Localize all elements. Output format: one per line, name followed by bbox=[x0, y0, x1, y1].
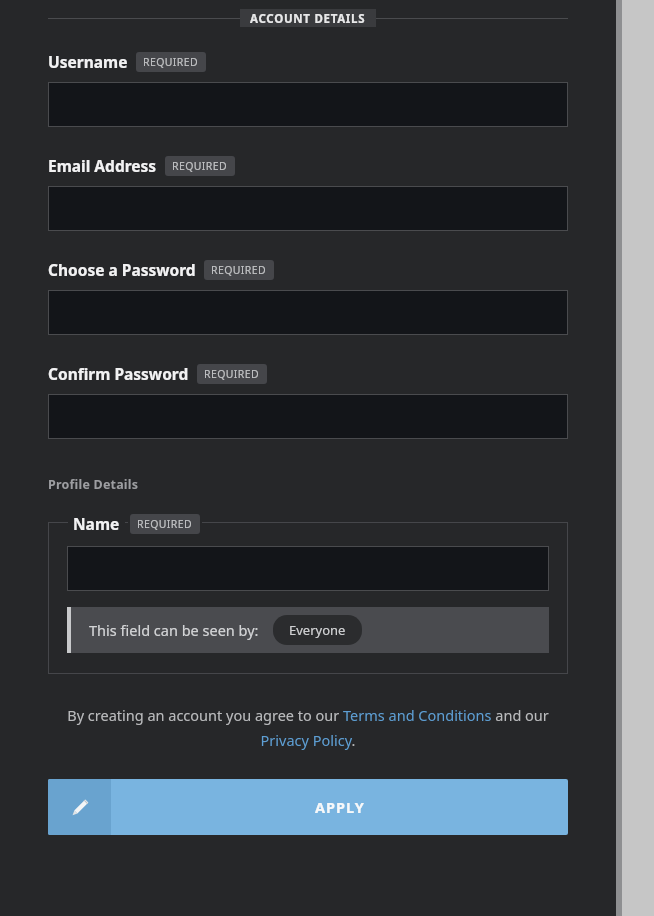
button[interactable]: Edit bbox=[48, 779, 568, 835]
staticText: This field can be seen by: bbox=[89, 620, 259, 640]
button[interactable] bbox=[67, 546, 549, 591]
other: Edit bbox=[48, 779, 111, 835]
staticText: Choose a Password bbox=[48, 259, 196, 280]
staticText: Name bbox=[73, 513, 120, 534]
button[interactable]: By creating an account you agree to our … bbox=[48, 705, 568, 750]
button[interactable] bbox=[48, 82, 568, 127]
staticText: REQUIRED bbox=[137, 517, 193, 531]
staticText: Email Address bbox=[48, 155, 157, 176]
staticText: REQUIRED bbox=[172, 159, 228, 173]
staticText: Everyone bbox=[289, 621, 346, 639]
button[interactable] bbox=[48, 186, 568, 231]
staticText: REQUIRED bbox=[211, 263, 267, 277]
staticText: REQUIRED bbox=[143, 55, 199, 69]
staticText: ACCOUNT DETAILS bbox=[250, 11, 366, 25]
button[interactable] bbox=[48, 290, 568, 335]
button[interactable] bbox=[48, 394, 568, 439]
staticText: APPLY bbox=[315, 797, 365, 817]
staticText: Profile Details bbox=[48, 476, 139, 493]
button[interactable]: Everyone bbox=[273, 615, 362, 645]
staticText: Confirm Password bbox=[48, 363, 189, 384]
staticText: REQUIRED bbox=[204, 367, 260, 381]
staticText: Username bbox=[48, 51, 128, 72]
